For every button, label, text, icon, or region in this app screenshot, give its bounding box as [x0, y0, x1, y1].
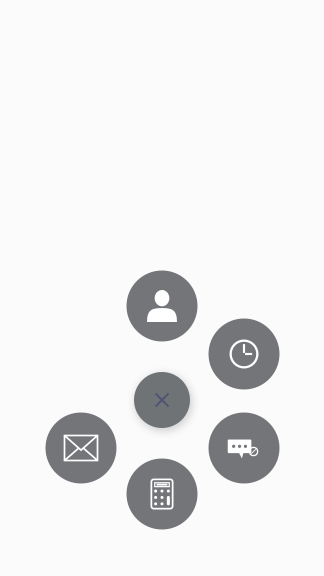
button[interactable]: Mail: [45, 412, 116, 483]
button[interactable]: Contacts: [126, 270, 197, 341]
button[interactable]: Messages: [208, 412, 279, 483]
button[interactable]: Close menu: [134, 372, 190, 428]
button[interactable]: Calculator: [126, 458, 197, 529]
button[interactable]: Clock: [208, 318, 279, 389]
